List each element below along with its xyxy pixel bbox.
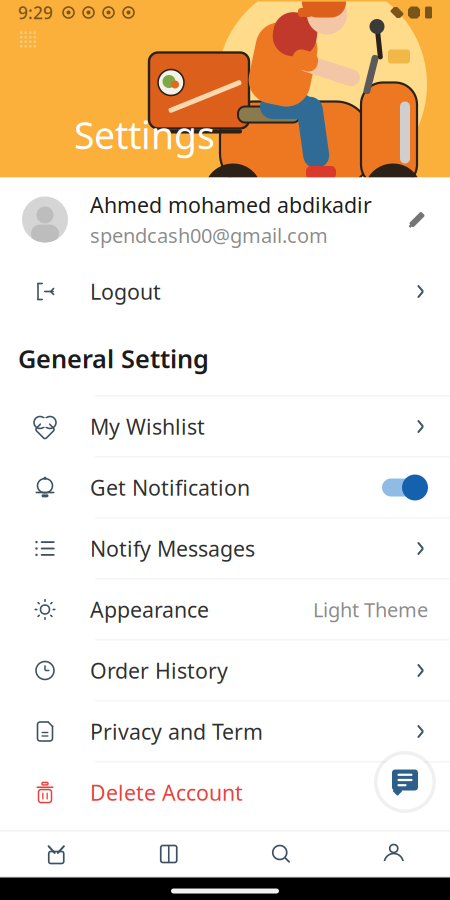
button[interactable]: Logout <box>0 261 450 321</box>
button[interactable]: Catalog <box>112 832 225 876</box>
button[interactable]: Notify Messages <box>0 518 450 578</box>
staticText: Privacy and Term <box>90 717 263 746</box>
button[interactable]: Privacy and Term <box>0 701 450 761</box>
staticText: Notify Messages <box>90 534 255 563</box>
staticText: My Wishlist <box>90 412 205 441</box>
button[interactable]: Home <box>0 832 112 876</box>
staticText: Delete Account <box>90 778 243 807</box>
staticText: Get Notification <box>90 473 250 502</box>
staticText: spendcash00@gmail.com <box>90 222 328 248</box>
button[interactable]: Search <box>225 832 337 876</box>
button[interactable]: My Wishlist <box>0 396 450 456</box>
button[interactable]: Get Notification <box>0 457 450 517</box>
staticText: Ahmed mohamed abdikadir <box>90 191 372 219</box>
staticText: 9:29 <box>18 1 53 24</box>
button[interactable]: Chat support <box>373 750 437 814</box>
button[interactable]: Delete Account <box>0 762 450 822</box>
staticText: General Setting <box>18 342 209 375</box>
staticText: Light Theme <box>313 596 428 623</box>
button[interactable]: Appearance <box>0 579 450 639</box>
button[interactable]: Ahmed mohamed abdikadir <box>0 177 450 261</box>
button[interactable]: Order History <box>0 640 450 700</box>
staticText: Order History <box>90 656 228 685</box>
staticText: Logout <box>90 277 161 306</box>
staticText: Settings <box>74 110 215 159</box>
button[interactable]: Profile <box>337 832 450 876</box>
staticText: Appearance <box>90 595 209 624</box>
